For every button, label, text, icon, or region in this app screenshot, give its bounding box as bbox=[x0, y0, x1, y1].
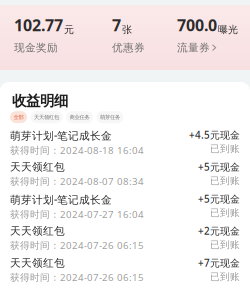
staticText: 流量券 bbox=[177, 41, 210, 54]
staticText: 现金奖励 bbox=[14, 41, 58, 54]
button[interactable]: 天天领红包 bbox=[0, 158, 250, 190]
staticText: 已到账 bbox=[210, 143, 240, 155]
staticText: 获得时间：2024-08-07 08:34 bbox=[10, 175, 144, 188]
button[interactable]: 天天领红包 bbox=[30, 111, 62, 123]
staticText: 收益明细 bbox=[12, 92, 68, 110]
staticText: 已到账 bbox=[210, 175, 240, 187]
staticText: +2元现金 bbox=[198, 224, 240, 237]
staticText: +5元现金 bbox=[198, 160, 240, 173]
button[interactable]: 天天领红包 bbox=[0, 254, 250, 286]
button[interactable]: 7 bbox=[112, 20, 145, 53]
staticText: 获得时间：2024-08-18 16:04 bbox=[10, 144, 144, 157]
button[interactable]: 萌芽计划-笔记成长金 bbox=[0, 126, 250, 158]
staticText: 优惠券 bbox=[112, 41, 145, 54]
button[interactable]: 商业任务 bbox=[66, 111, 93, 123]
staticText: 获得时间：2024-07-26 06:15 bbox=[10, 271, 144, 284]
button[interactable]: 萌芽计划-笔记成长金 bbox=[0, 190, 250, 222]
staticText: 元 bbox=[64, 23, 74, 36]
staticText: 7 bbox=[112, 14, 121, 36]
staticText: +5元现金 bbox=[198, 192, 240, 205]
staticText: 天天领红包 bbox=[34, 114, 59, 120]
button[interactable]: 全部 bbox=[10, 111, 27, 123]
staticText: 张 bbox=[122, 23, 132, 36]
staticText: 已到账 bbox=[210, 271, 240, 283]
staticText: 萌芽任务 bbox=[100, 114, 120, 120]
staticText: 天天领红包 bbox=[10, 160, 65, 173]
button[interactable]: 萌芽任务 bbox=[96, 111, 123, 123]
staticText: 萌芽计划-笔记成长金 bbox=[10, 128, 112, 143]
staticText: 曝光 bbox=[218, 23, 238, 36]
button[interactable]: 天天领红包 bbox=[0, 222, 250, 254]
staticText: 萌芽计划-笔记成长金 bbox=[10, 192, 112, 207]
staticText: 获得时间：2024-07-26 06:15 bbox=[10, 239, 144, 252]
staticText: 已到账 bbox=[210, 239, 240, 251]
button[interactable]: 102.77 bbox=[14, 20, 74, 53]
staticText: 天天领红包 bbox=[10, 256, 65, 269]
staticText: +7元现金 bbox=[198, 256, 240, 269]
button[interactable]: 700.0 bbox=[177, 20, 238, 53]
staticText: 102.77 bbox=[14, 14, 63, 36]
staticText: 全部 bbox=[13, 114, 23, 120]
staticText: 商业任务 bbox=[69, 114, 89, 120]
staticText: +4.5元现金 bbox=[189, 128, 240, 141]
staticText: 天天领红包 bbox=[10, 224, 65, 237]
staticText: 700.0 bbox=[177, 14, 217, 36]
staticText: 获得时间：2024-07-27 16:04 bbox=[10, 208, 144, 221]
staticText: 已到账 bbox=[210, 207, 240, 219]
